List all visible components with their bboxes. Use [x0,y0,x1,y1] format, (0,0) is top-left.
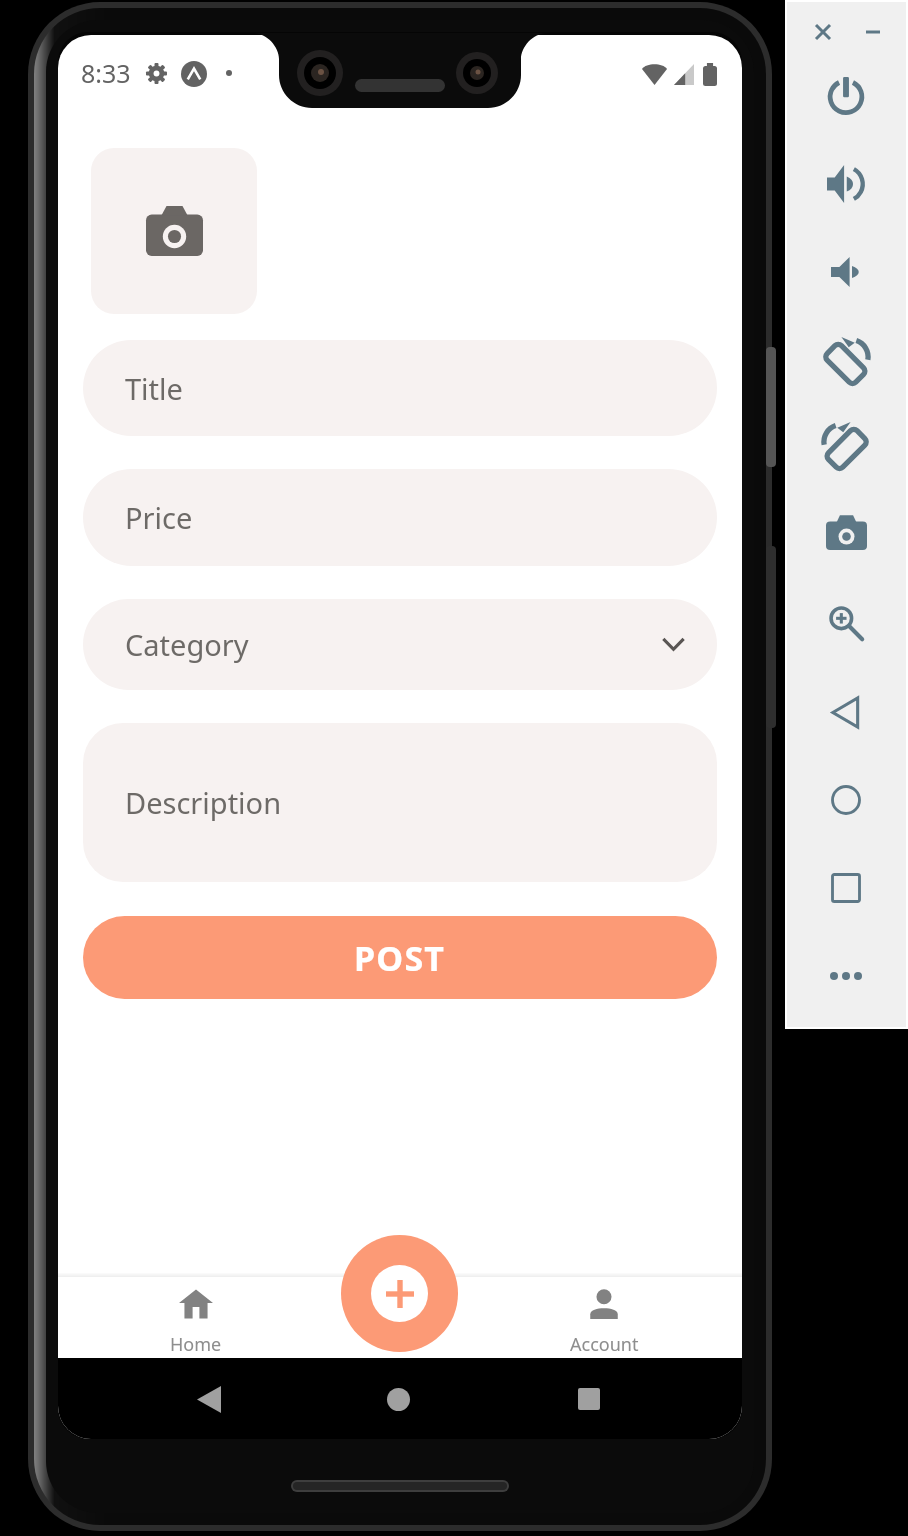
staticText: Description [125,783,282,822]
button[interactable]: Close [808,17,838,47]
staticText: POST [354,935,446,981]
button[interactable]: Description [83,723,717,882]
button[interactable]: Take screenshot [820,508,872,560]
button[interactable]: Recents [561,1371,617,1427]
button[interactable]: Price [83,469,717,566]
button[interactable]: Zoom [820,597,872,649]
button[interactable]: Power [820,70,872,122]
button[interactable]: Title [83,340,717,436]
button[interactable]: Add photo [91,148,257,314]
staticText: Category [125,625,249,664]
button[interactable]: Add [341,1235,458,1352]
button[interactable]: Rotate right [820,419,872,471]
staticText: 8:33 [81,56,131,90]
button[interactable]: Home [820,774,872,826]
staticText: Price [125,498,193,537]
button[interactable]: Home [136,1289,256,1365]
button[interactable]: Account [544,1289,664,1365]
button[interactable]: Back [820,686,872,738]
button[interactable]: Volume down [820,246,872,298]
button[interactable]: POST [83,916,717,999]
button[interactable]: Volume up [820,158,872,210]
staticText: Title [125,369,183,408]
button[interactable]: Overview [820,862,872,914]
button[interactable]: Back [181,1371,237,1427]
button[interactable]: More [820,950,872,1002]
staticText: Account [570,1332,639,1357]
button[interactable]: Minimize [858,17,888,47]
button[interactable]: Home [370,1371,426,1427]
staticText: Home [170,1332,222,1357]
button[interactable]: Rotate left [820,334,872,386]
button[interactable]: Category [83,599,717,690]
